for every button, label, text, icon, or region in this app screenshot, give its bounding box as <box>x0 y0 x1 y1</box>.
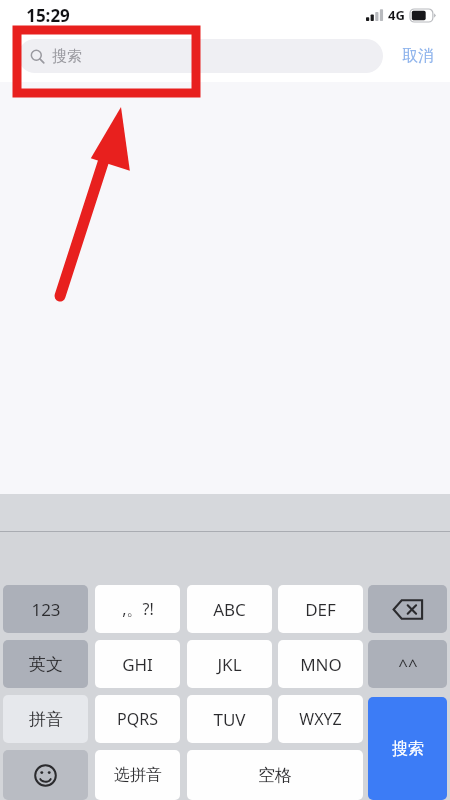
button[interactable]: GHI <box>95 640 180 688</box>
button[interactable]: 搜索 <box>368 697 447 800</box>
staticText: MNO <box>300 653 342 676</box>
button[interactable]: WXYZ <box>278 695 363 743</box>
button[interactable]: 123 <box>3 585 88 633</box>
button[interactable]: PQRS <box>95 695 180 743</box>
staticText: 选拼音 <box>114 765 162 785</box>
button[interactable]: ^^ <box>368 640 447 688</box>
button[interactable]: TUV <box>187 695 272 743</box>
button[interactable]: ABC <box>187 585 272 633</box>
button[interactable]: JKL <box>187 640 272 688</box>
staticText: 搜索 <box>392 739 424 759</box>
button[interactable]: 拼音 <box>3 695 88 743</box>
button[interactable]: 英文 <box>3 640 88 688</box>
staticText: 123 <box>31 598 61 621</box>
button[interactable]: ,。?! <box>95 585 180 633</box>
staticText: TUV <box>213 708 246 731</box>
button[interactable]: 搜索 <box>18 39 383 73</box>
staticText: 空格 <box>258 765 292 786</box>
staticText: 英文 <box>29 654 63 675</box>
staticText: 15:29 <box>26 4 70 27</box>
staticText: 取消 <box>402 46 434 66</box>
button[interactable]: Delete <box>368 585 447 633</box>
staticText: 4G <box>388 6 405 24</box>
staticText: ABC <box>213 598 246 621</box>
button[interactable]: 选拼音 <box>95 750 180 800</box>
button[interactable]: 取消 <box>398 42 438 70</box>
staticText: DEF <box>305 598 336 621</box>
staticText: WXYZ <box>299 708 342 730</box>
button[interactable]: MNO <box>278 640 363 688</box>
staticText: PQRS <box>117 708 158 730</box>
staticText: GHI <box>122 653 153 676</box>
button[interactable]: DEF <box>278 585 363 633</box>
staticText: ,。?! <box>122 598 154 620</box>
staticText: ^^ <box>398 653 418 676</box>
staticText: JKL <box>217 653 242 676</box>
button[interactable]: Emoji <box>3 750 88 800</box>
staticText: 搜索 <box>52 47 82 66</box>
button[interactable]: 空格 <box>187 750 363 800</box>
staticText: 拼音 <box>29 709 63 730</box>
